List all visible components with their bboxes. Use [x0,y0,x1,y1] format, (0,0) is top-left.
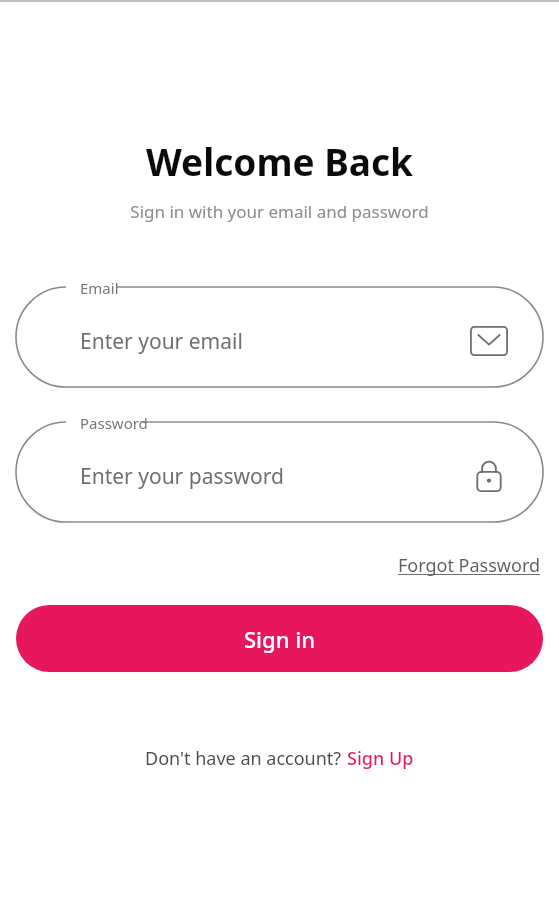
staticText: Enter your password [80,462,284,491]
button[interactable]: Password [16,422,543,522]
staticText: Forgot Password [398,553,541,578]
staticText: Don't have an account? [145,746,346,771]
staticText: Enter your email [80,327,243,356]
other: Email [469,321,509,361]
staticText: Password [80,413,148,433]
staticText: Sign Up [347,746,414,771]
button[interactable]: Sign in [16,605,543,672]
staticText: Welcome Back [146,136,413,186]
button[interactable]: Email [16,287,543,387]
staticText: Email [80,278,119,298]
other: Password [469,456,509,496]
staticText: Sign in [244,624,315,654]
button[interactable]: Sign Up [346,744,415,773]
button[interactable]: Forgot Password [396,550,543,581]
staticText: Sign in with your email and password [130,200,429,223]
